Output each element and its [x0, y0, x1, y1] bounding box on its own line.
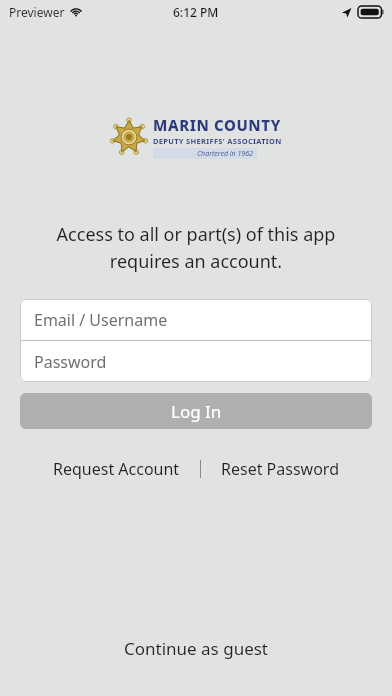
button[interactable]: Password: [20, 341, 372, 382]
staticText: Email / Username: [34, 309, 168, 331]
staticText: Access to all or part(s) of this app req…: [0, 222, 392, 273]
staticText: Password: [34, 351, 107, 373]
button[interactable]: Request Account: [47, 454, 186, 484]
staticText: 6:12 PM: [173, 4, 219, 20]
staticText: Continue as guest: [124, 637, 269, 660]
button[interactable]: Reset Password: [215, 454, 345, 484]
staticText: Previewer: [9, 4, 65, 20]
staticText: Chartered in 1962: [197, 149, 253, 159]
staticText: Log In: [171, 400, 222, 423]
staticText: DEPUTY SHERIFFS' ASSOCIATION: [153, 136, 282, 146]
button[interactable]: Email / Username: [20, 299, 372, 340]
staticText: MARIN COUNTY: [153, 115, 281, 135]
staticText: Request Account: [53, 458, 180, 480]
staticText: Reset Password: [221, 458, 339, 480]
button[interactable]: Log In: [20, 393, 372, 429]
button[interactable]: Continue as guest: [0, 629, 392, 668]
